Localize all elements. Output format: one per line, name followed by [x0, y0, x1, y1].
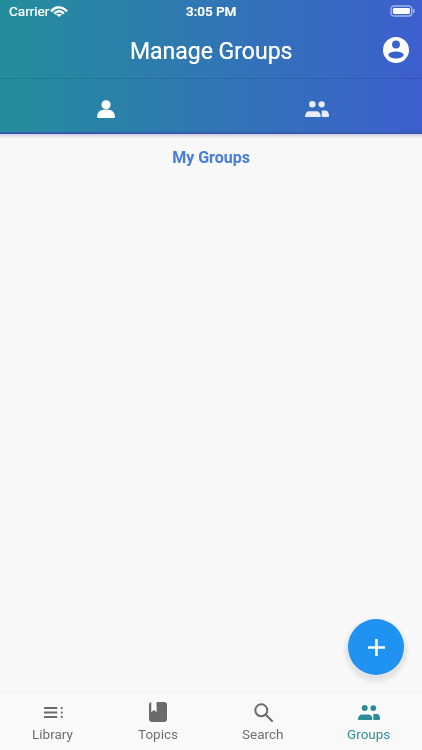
button[interactable]: Library: [0, 693, 105, 750]
button[interactable]: Topics: [105, 693, 210, 750]
staticText: 3:05 PM: [186, 3, 237, 19]
staticText: Groups: [347, 726, 391, 742]
staticText: Carrier: [9, 3, 50, 19]
button[interactable]: Groups tab: [211, 79, 422, 131]
button[interactable]: Add group: [348, 619, 404, 675]
staticText: Topics: [138, 726, 178, 742]
staticText: My Groups: [0, 148, 422, 167]
button[interactable]: Groups: [316, 693, 422, 750]
button[interactable]: Account: [376, 30, 416, 70]
staticText: Search: [242, 726, 284, 742]
staticText: Manage Groups: [130, 38, 293, 65]
button[interactable]: Search: [210, 693, 316, 750]
button[interactable]: Individuals tab: [0, 79, 211, 131]
staticText: Library: [32, 726, 73, 742]
